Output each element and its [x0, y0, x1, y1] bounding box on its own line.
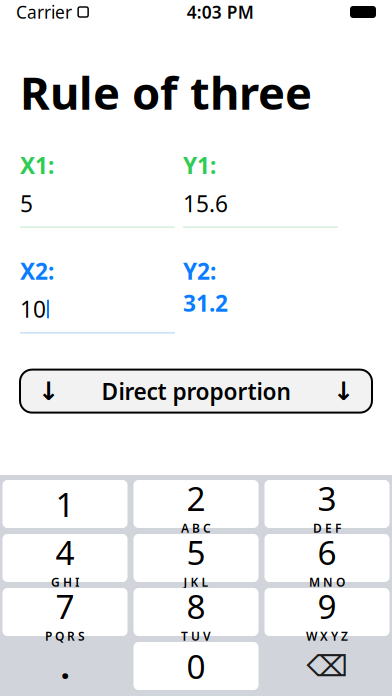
staticText: .: [60, 644, 69, 688]
staticText: ↓: [38, 377, 59, 405]
staticText: P Q R S: [45, 628, 85, 644]
staticText: [71, 0, 77, 27]
staticText: ⌫: [306, 649, 347, 683]
staticText: A B C: [181, 520, 211, 536]
staticText: 6: [317, 530, 336, 574]
button[interactable]: 3: [264, 480, 389, 528]
staticText: M N O: [309, 574, 345, 590]
staticText: 2: [186, 476, 205, 520]
staticText: Direct proportion: [101, 376, 290, 406]
staticText: D E F: [313, 520, 341, 536]
button[interactable]: 4: [2, 534, 127, 582]
staticText: Rule of three: [20, 62, 312, 122]
staticText: 5: [186, 530, 205, 574]
staticText: X1:: [20, 150, 54, 180]
staticText: 31.2: [183, 288, 228, 318]
staticText: 3: [317, 476, 336, 520]
button[interactable]: 7: [2, 588, 127, 636]
staticText: 0: [186, 644, 205, 688]
staticText: 10: [20, 294, 46, 324]
staticText: Y2:: [183, 256, 216, 286]
button[interactable]: 0: [133, 642, 258, 690]
staticText: T U V: [181, 628, 211, 644]
button[interactable]: ↓: [20, 370, 372, 413]
staticText: W X Y Z: [306, 628, 348, 644]
button[interactable]: Delete: [264, 642, 389, 690]
staticText: ↓: [333, 377, 354, 405]
staticText: 1: [55, 482, 74, 526]
button[interactable]: 5: [133, 534, 258, 582]
staticText: G H I: [51, 574, 79, 590]
button[interactable]: Decimal point: [2, 642, 127, 690]
staticText: 15.6: [183, 188, 228, 218]
staticText: Carrier: [16, 0, 72, 23]
staticText: 5: [20, 188, 33, 218]
staticText: 4:03 PM: [187, 0, 254, 23]
staticText: J K L: [183, 574, 208, 590]
staticText: 8: [186, 584, 205, 628]
button[interactable]: 9: [264, 588, 389, 636]
staticText: X2:: [20, 256, 54, 286]
staticText: 4: [55, 530, 74, 574]
staticText: 7: [55, 584, 74, 628]
staticText: Y1:: [183, 150, 216, 180]
button[interactable]: 1: [2, 480, 127, 528]
button[interactable]: 8: [133, 588, 258, 636]
staticText: 9: [317, 584, 336, 628]
button[interactable]: 6: [264, 534, 389, 582]
button[interactable]: 2: [133, 480, 258, 528]
